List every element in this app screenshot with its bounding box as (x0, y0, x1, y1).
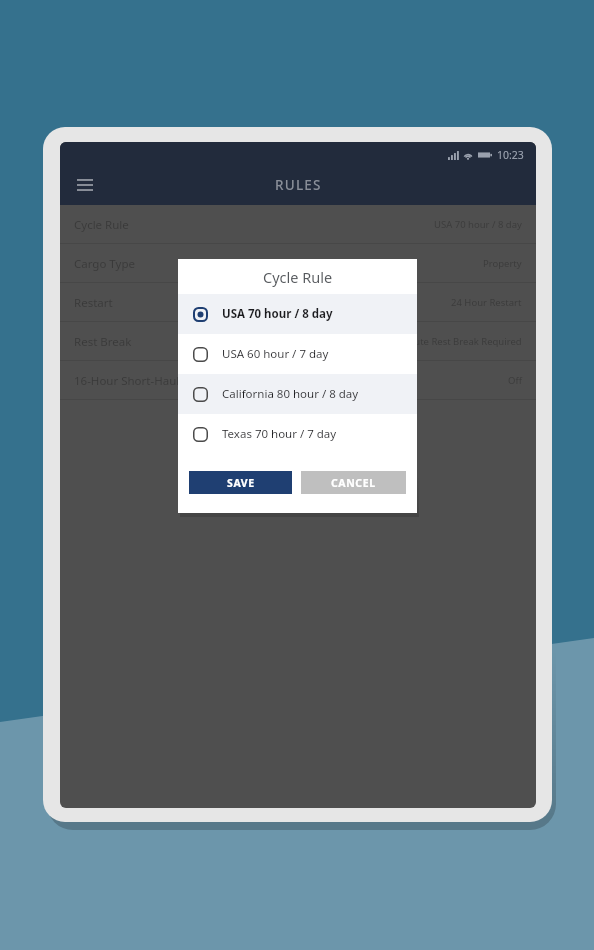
staticText: USA 70 hour / 8 day (222, 306, 333, 322)
staticText: 16-Hour Short-Haul Exception (74, 373, 238, 389)
button[interactable]: USA 70 hour / 8 day (178, 294, 417, 334)
staticText: Restart (74, 295, 113, 311)
staticText: Rest Break (74, 334, 132, 350)
staticText: California 80 hour / 8 day (222, 386, 359, 402)
button[interactable]: Texas 70 hour / 7 day (178, 414, 417, 454)
button[interactable]: SAVE (189, 471, 292, 494)
staticText: Cycle Rule (74, 217, 129, 233)
staticText: Texas 70 hour / 7 day (222, 426, 337, 442)
staticText: Property (483, 257, 522, 270)
staticText: SAVE (227, 476, 255, 490)
staticText: RULES (275, 176, 322, 194)
button[interactable]: USA 60 hour / 7 day (178, 334, 417, 374)
button[interactable]: 16-Hour Short-Haul Exception (60, 361, 536, 400)
staticText: USA 60 hour / 7 day (222, 346, 329, 362)
staticText: 30 Minute Rest Break Required (384, 335, 522, 348)
button[interactable]: Rest Break (60, 322, 536, 361)
button[interactable]: CANCEL (301, 471, 406, 494)
staticText: CANCEL (331, 476, 376, 490)
button[interactable]: Restart (60, 283, 536, 322)
staticText: Off (508, 374, 522, 387)
staticText: Cargo Type (74, 256, 135, 272)
staticText: USA 70 hour / 8 day (434, 218, 522, 231)
staticText: Cycle Rule (263, 267, 333, 287)
button[interactable]: Cargo Type (60, 244, 536, 283)
button[interactable]: Open navigation menu (70, 170, 100, 200)
staticText: 24 Hour Restart (451, 296, 522, 309)
staticText: 10:23 (497, 148, 524, 162)
button[interactable]: California 80 hour / 8 day (178, 374, 417, 414)
